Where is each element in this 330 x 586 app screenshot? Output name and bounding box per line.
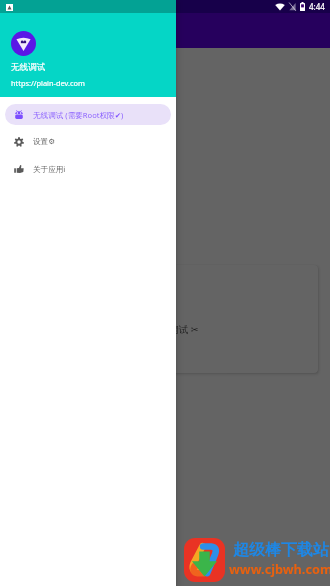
- staticText: 无线调试: [11, 62, 46, 73]
- staticText: 设置⚙️: [33, 137, 55, 147]
- staticText: 开始无线调试 ✂️: [12, 323, 318, 336]
- staticText: www.cjbwh.com: [229, 560, 330, 577]
- button[interactable]: 关于应用ℹ️: [5, 158, 171, 179]
- staticText: 无线调试 (需要Root权限✔️): [33, 110, 124, 120]
- button[interactable]: 无线调试 (需要Root权限✔️): [5, 104, 171, 125]
- button[interactable]: 设置⚙️: [5, 131, 171, 152]
- staticText: 关于应用ℹ️: [33, 164, 66, 174]
- staticText: 4:44: [309, 1, 325, 12]
- staticText: 超级棒下载站: [233, 540, 329, 560]
- staticText: https://plain-dev.com: [11, 78, 85, 88]
